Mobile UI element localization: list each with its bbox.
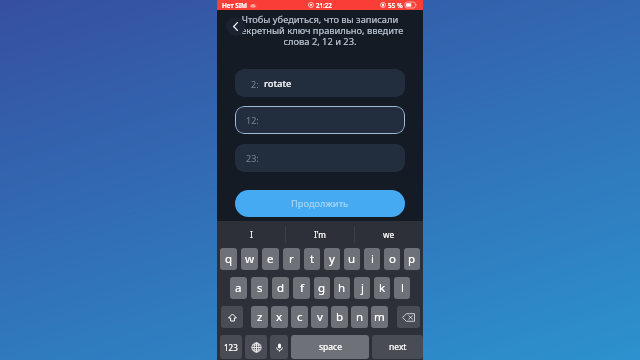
staticText: t [310,251,315,267]
staticText: 55 % [388,1,403,10]
staticText: Продолжить [291,197,349,210]
button[interactable]: m [371,306,388,328]
staticText: j [361,280,364,296]
staticText: a [235,280,242,296]
staticText: 23: [246,152,259,164]
button[interactable]: x [271,306,288,328]
button[interactable]: I'm [286,221,354,247]
staticText: l [401,280,404,296]
button[interactable]: t [304,248,320,270]
button[interactable]: e [262,248,279,270]
button[interactable]: Backspace [397,306,420,328]
button[interactable]: o [384,248,400,270]
staticText: c [297,309,303,325]
staticText: space [319,341,342,353]
button[interactable]: w [241,248,258,270]
staticText: rotate [264,77,292,90]
staticText: u [348,251,356,267]
staticText: x [276,309,283,325]
button[interactable]: y [324,248,340,270]
staticText: n [356,309,364,325]
button[interactable]: 123 [220,335,242,359]
button[interactable]: l [394,277,410,299]
staticText: p [408,251,416,267]
button[interactable]: p [404,248,420,270]
button[interactable]: n [351,306,368,328]
staticText: b [336,309,344,325]
staticText: d [277,280,285,296]
staticText: w [245,251,255,267]
staticText: h [338,280,346,296]
button[interactable]: Shift [221,306,243,328]
staticText: e [267,251,274,267]
staticText: v [317,309,323,325]
staticText: Нет SIM [222,1,248,10]
staticText: o [389,251,396,267]
button[interactable]: a [230,277,247,299]
button[interactable]: s [251,277,268,299]
staticText: Чтобы убедиться, что вы записали секретн… [225,13,415,48]
staticText: m [374,309,385,325]
staticText: 123 [224,342,238,353]
button[interactable]: f [293,277,310,299]
button[interactable]: we [355,221,423,247]
button[interactable]: c [291,306,308,328]
button[interactable]: d [272,277,289,299]
button[interactable]: 2: [235,69,405,97]
button[interactable]: Change keyboard [245,335,267,359]
staticText: g [318,280,326,296]
button[interactable]: q [220,248,237,270]
button[interactable]: space [291,335,369,359]
staticText: 21:22 [316,1,332,9]
staticText: 2: [251,78,259,90]
staticText: I'm [314,229,327,240]
button[interactable]: Продолжить [235,190,405,217]
staticText: q [225,251,233,267]
button[interactable]: next [372,335,423,359]
staticText: I [250,229,253,240]
staticText: f [300,280,304,296]
staticText: 12: [246,114,259,126]
button[interactable]: 23: [235,144,405,172]
button[interactable]: Voice input [270,335,288,359]
staticText: y [329,251,335,267]
staticText: s [257,280,263,296]
staticText: k [379,280,386,296]
button[interactable]: 12: [235,106,405,134]
staticText: r [289,251,294,267]
button[interactable]: g [314,277,330,299]
button[interactable]: i [364,248,380,270]
staticText: z [257,309,263,325]
button[interactable]: I [217,221,285,247]
staticText: next [389,341,407,353]
button[interactable]: z [251,306,268,328]
button[interactable]: h [334,277,350,299]
button[interactable]: r [283,248,300,270]
button[interactable]: k [374,277,390,299]
button[interactable]: b [331,306,348,328]
staticText: we [383,229,395,240]
staticText: i [371,251,374,267]
button[interactable]: v [311,306,328,328]
button[interactable]: j [354,277,370,299]
button[interactable]: Back [226,17,245,36]
button[interactable]: u [344,248,360,270]
